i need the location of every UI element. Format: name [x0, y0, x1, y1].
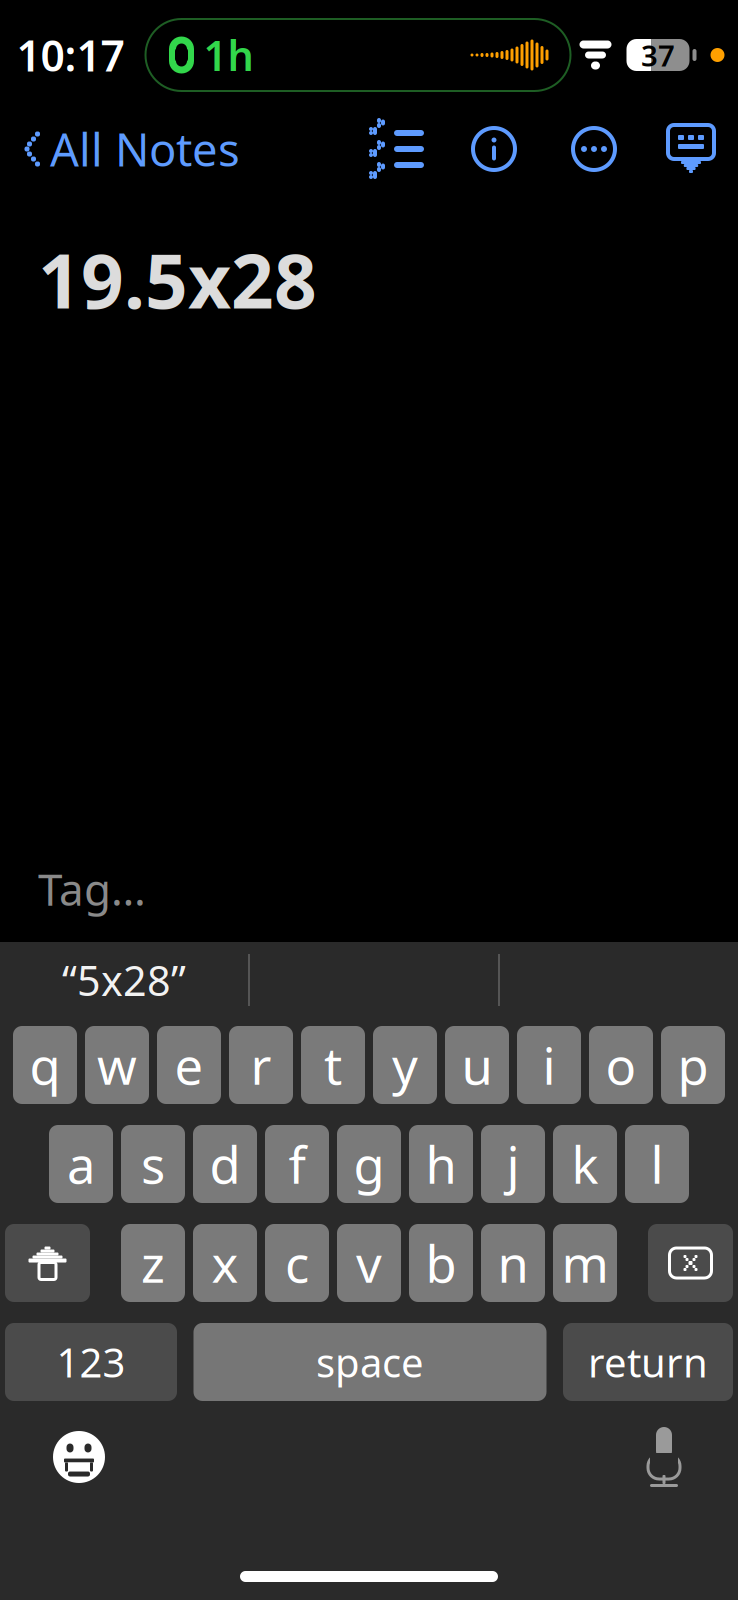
staticText: f — [288, 1130, 305, 1198]
button[interactable]: k — [553, 1125, 617, 1203]
button[interactable]: “5x28” — [0, 942, 248, 1018]
button[interactable]: e — [157, 1026, 221, 1104]
button[interactable]: m — [553, 1224, 617, 1302]
staticText: r — [250, 1031, 271, 1099]
button[interactable]: More — [544, 125, 644, 173]
staticText: d — [209, 1130, 240, 1198]
button[interactable]: c — [265, 1224, 329, 1302]
staticText: y — [392, 1031, 418, 1099]
button[interactable]: Emoji — [0, 1426, 108, 1488]
staticText: w — [97, 1031, 137, 1099]
staticText: q — [29, 1031, 60, 1099]
staticText: Tag… — [38, 860, 146, 918]
button[interactable]: All Notes — [0, 111, 240, 187]
staticText: z — [141, 1229, 165, 1297]
staticText: e — [174, 1031, 203, 1099]
button[interactable]: o — [589, 1026, 653, 1104]
staticText: 123 — [56, 1335, 125, 1388]
button[interactable]: n — [481, 1224, 545, 1302]
button[interactable]: s — [121, 1125, 185, 1203]
staticText: u — [461, 1031, 492, 1099]
button[interactable]: g — [337, 1125, 401, 1203]
button[interactable]: j — [481, 1125, 545, 1203]
staticText: 37 — [641, 35, 675, 74]
staticText: h — [425, 1130, 456, 1198]
button[interactable]: Tag… — [0, 860, 738, 942]
button[interactable]: f — [265, 1125, 329, 1203]
button[interactable]: r — [229, 1026, 293, 1104]
button[interactable]: a — [49, 1125, 113, 1203]
button[interactable]: z — [121, 1224, 185, 1302]
button[interactable]: Shift — [5, 1224, 90, 1302]
button[interactable]: Info — [444, 125, 544, 173]
staticText: c — [285, 1229, 309, 1297]
button[interactable]: i — [517, 1026, 581, 1104]
button[interactable]: w — [85, 1026, 149, 1104]
button[interactable]: v — [337, 1224, 401, 1302]
staticText: t — [324, 1031, 342, 1099]
staticText: k — [571, 1130, 598, 1198]
button[interactable]: space — [193, 1323, 546, 1401]
staticText: g — [353, 1130, 384, 1198]
staticText: n — [497, 1229, 528, 1297]
button[interactable]: u — [445, 1026, 509, 1104]
staticText: i — [542, 1031, 555, 1099]
staticText: a — [67, 1130, 95, 1198]
button[interactable]: return — [563, 1323, 733, 1401]
button[interactable]: l — [625, 1125, 689, 1203]
button[interactable]: y — [373, 1026, 437, 1104]
button[interactable]: x — [193, 1224, 257, 1302]
staticText: “5x28” — [62, 953, 186, 1007]
staticText: space — [316, 1335, 424, 1388]
staticText: l — [650, 1130, 663, 1198]
staticText: 1h — [203, 28, 253, 82]
staticText: x — [211, 1229, 238, 1297]
staticText: return — [588, 1335, 708, 1388]
button[interactable]: b — [409, 1224, 473, 1302]
button[interactable]: t — [301, 1026, 365, 1104]
button[interactable]: Checklist — [348, 126, 444, 172]
staticText: 19.5x28 — [38, 230, 317, 329]
button[interactable]: d — [193, 1125, 257, 1203]
staticText: p — [677, 1031, 708, 1099]
staticText: All Notes — [50, 119, 240, 179]
button[interactable]: h — [409, 1125, 473, 1203]
button[interactable]: q — [13, 1026, 77, 1104]
button[interactable]: Hide Keyboard — [644, 122, 716, 176]
staticText: s — [141, 1130, 165, 1198]
staticText: 10:17 — [16, 27, 124, 83]
staticText: b — [425, 1229, 456, 1297]
staticText: m — [561, 1229, 608, 1297]
staticText: v — [356, 1229, 382, 1297]
staticText: o — [605, 1031, 636, 1099]
button[interactable]: p — [661, 1026, 725, 1104]
button[interactable]: Dictate — [646, 1425, 738, 1489]
button[interactable]: 123 — [5, 1323, 177, 1401]
button[interactable]: Delete — [648, 1224, 733, 1302]
staticText: j — [506, 1130, 519, 1198]
